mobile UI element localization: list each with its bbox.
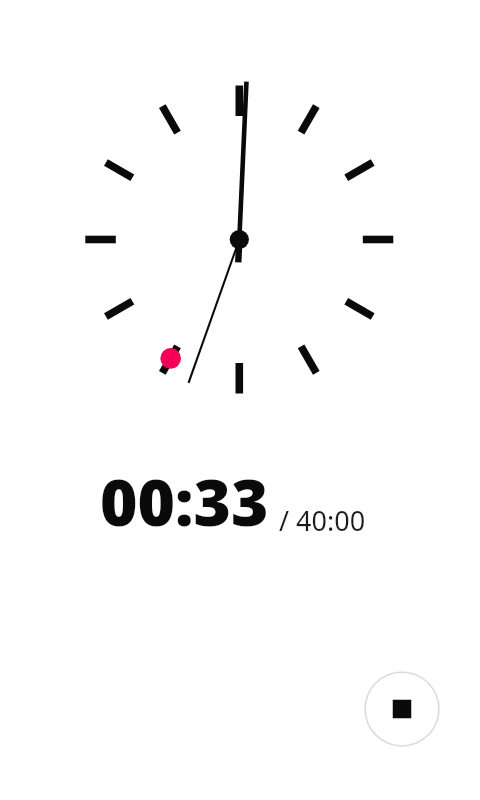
staticText: 00:33 [100,458,269,545]
button[interactable]: Stop [364,671,440,747]
staticText: / 40:00 [279,502,366,539]
